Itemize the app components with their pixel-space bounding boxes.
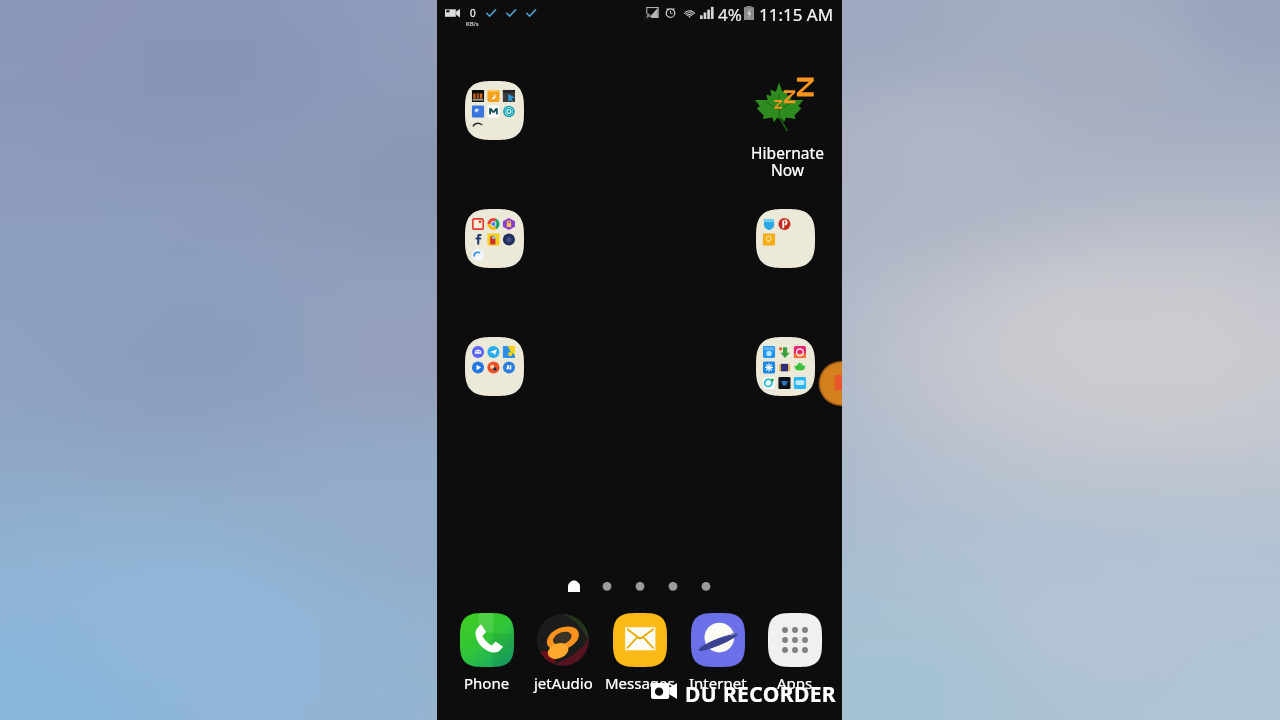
staticText: Phone: [464, 673, 510, 693]
button[interactable]: Folder: [465, 81, 524, 140]
staticText: 4%: [718, 3, 742, 26]
staticText: 0: [470, 6, 476, 20]
staticText: Apps: [777, 673, 813, 693]
staticText: Messages: [605, 673, 675, 693]
button[interactable]: Hibernate Now: [744, 72, 830, 181]
staticText: KB/s: [466, 20, 479, 28]
staticText: Hibernate Now: [751, 142, 824, 181]
staticText: jetAudio: [534, 673, 593, 693]
button[interactable]: Apps: [757, 613, 833, 693]
button[interactable]: jetAudio: [525, 613, 601, 693]
button[interactable]: Internet: [680, 613, 756, 693]
button[interactable]: Messages: [602, 613, 678, 693]
staticText: Internet: [689, 673, 747, 693]
button[interactable]: Folder: [756, 209, 815, 268]
button[interactable]: Folder: [465, 337, 524, 396]
staticText: 11:15 AM: [759, 3, 834, 26]
button[interactable]: Folder: [756, 337, 815, 396]
button[interactable]: Phone: [449, 613, 525, 693]
staticText: DU RECORDER: [685, 680, 837, 709]
button[interactable]: Folder: [465, 209, 524, 268]
